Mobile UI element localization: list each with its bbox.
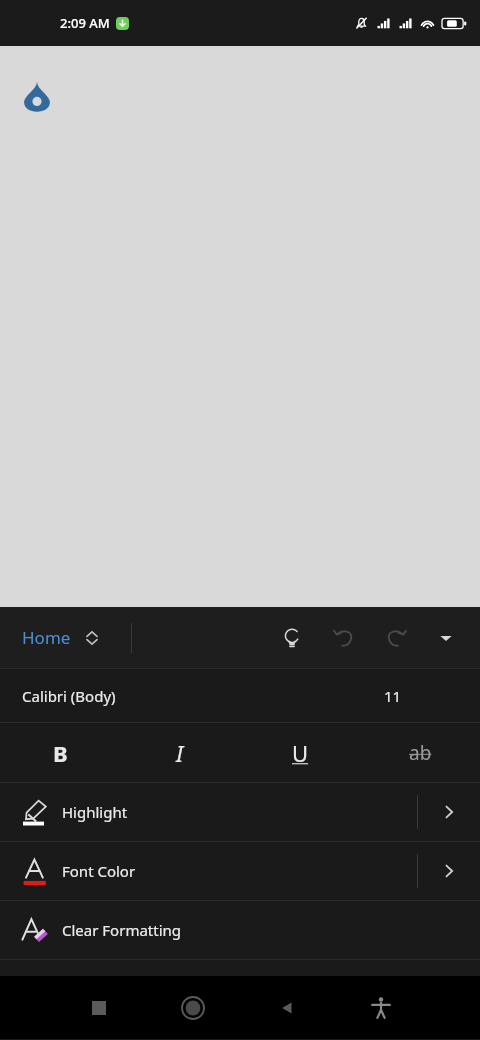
other: Ink drop	[20, 79, 54, 113]
button[interactable]: Clear Formatting	[0, 901, 480, 959]
button[interactable]: Undo	[318, 612, 370, 664]
button[interactable]: Back	[240, 976, 334, 1039]
staticText: Home	[22, 626, 71, 649]
button[interactable]: Bold	[0, 723, 120, 782]
staticText: Clear Formatting	[62, 920, 182, 940]
button[interactable]: Italic	[120, 723, 240, 782]
staticText: U	[292, 738, 309, 768]
button[interactable]: Highlight	[0, 783, 480, 841]
staticText: Font Color	[62, 861, 136, 881]
button[interactable]: Expand ribbon	[422, 614, 470, 662]
staticText: I	[176, 738, 184, 768]
button[interactable]: Recent apps	[52, 976, 146, 1039]
staticText: 11	[384, 686, 402, 706]
button[interactable]: Home	[20, 620, 103, 655]
staticText: 2:09 AM	[60, 14, 110, 32]
staticText: Highlight	[62, 802, 128, 822]
button[interactable]: Font Color	[0, 842, 480, 900]
staticText: Calibri (Body)	[22, 686, 116, 706]
staticText: ab	[409, 740, 432, 766]
button[interactable]: Home	[146, 976, 240, 1039]
button[interactable]: Tell me what you want to do	[266, 612, 318, 664]
button[interactable]: Underline	[240, 723, 360, 782]
button[interactable]: Strikethrough	[360, 723, 480, 782]
button[interactable]: Redo	[370, 612, 422, 664]
button[interactable]: Accessibility	[334, 976, 428, 1039]
button[interactable]: Calibri (Body)	[0, 669, 480, 722]
staticText: B	[53, 738, 68, 768]
